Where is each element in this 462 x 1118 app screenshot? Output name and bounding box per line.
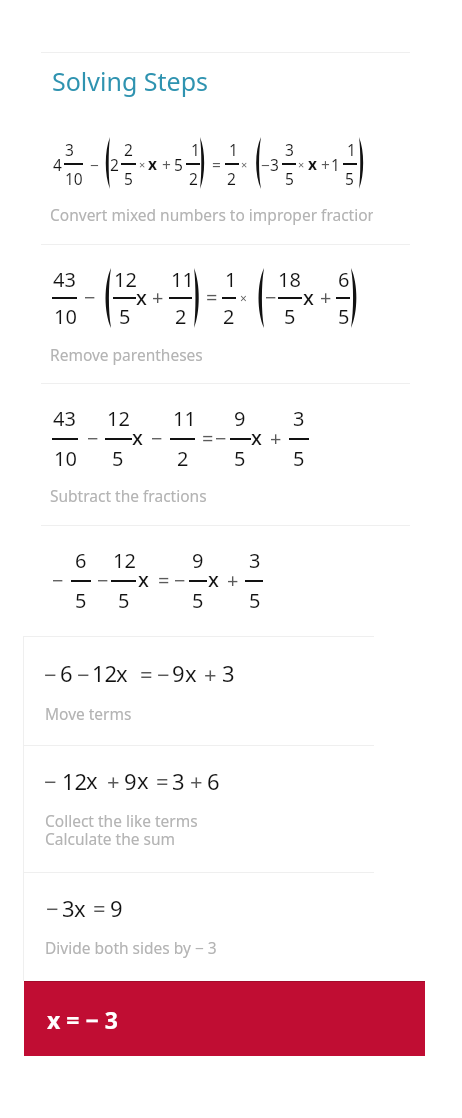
button[interactable]	[23, 746, 374, 872]
button[interactable]	[41, 258, 410, 376]
staticText: x	[251, 424, 262, 451]
staticText: 2	[175, 303, 187, 330]
staticText: x	[137, 765, 149, 795]
staticText: 9	[124, 766, 137, 796]
staticText: −	[90, 154, 99, 175]
staticText: 3	[249, 547, 261, 574]
staticText: 18	[278, 266, 301, 293]
staticText: x	[116, 658, 128, 688]
staticText: =	[156, 766, 169, 796]
staticText: 1	[347, 139, 356, 160]
staticText: 5	[284, 303, 296, 330]
staticText: 2	[110, 154, 119, 175]
staticText: +	[204, 659, 217, 689]
button[interactable]	[23, 637, 374, 745]
staticText: x	[132, 424, 143, 451]
staticText: 3	[62, 893, 75, 923]
staticText: 3	[65, 139, 74, 160]
staticText: 3	[270, 154, 279, 175]
staticText: 43	[53, 266, 76, 293]
staticText: 2	[124, 139, 133, 160]
staticText: −	[174, 567, 186, 594]
staticText: 11	[173, 405, 196, 432]
staticText: Solving Steps	[52, 64, 208, 98]
staticText: +	[320, 284, 332, 311]
staticText: x	[86, 765, 98, 795]
staticText: 6	[75, 547, 87, 574]
staticText: 4	[53, 154, 62, 175]
staticText: 5	[249, 587, 261, 614]
staticText: =	[93, 893, 106, 923]
staticText: =	[158, 567, 170, 594]
staticText: ×	[139, 157, 146, 172]
staticText: 10	[65, 168, 83, 189]
staticText: 5	[285, 168, 294, 189]
staticText: Subtract the fractions	[50, 485, 207, 506]
staticText: x	[136, 284, 147, 311]
staticText: 9	[110, 893, 123, 923]
staticText: 9	[234, 405, 246, 432]
staticText: −	[84, 284, 96, 311]
staticText: 5	[112, 445, 124, 472]
staticText: 1	[331, 154, 340, 175]
staticText: 11	[171, 266, 194, 293]
staticText: 3	[285, 139, 294, 160]
staticText: ×	[240, 290, 247, 306]
staticText: 6	[60, 658, 73, 688]
staticText: x	[185, 658, 197, 688]
staticText: x	[74, 893, 86, 923]
button[interactable]	[41, 131, 410, 241]
staticText: −	[157, 659, 170, 689]
button[interactable]	[23, 873, 374, 971]
staticText: 2	[227, 168, 236, 189]
staticText: 9	[172, 658, 185, 688]
staticText: −	[46, 893, 59, 923]
staticText: +	[107, 766, 120, 796]
staticText: 5	[192, 587, 204, 614]
staticText: 12	[107, 405, 130, 432]
staticText: −	[151, 425, 163, 452]
staticText: ×	[298, 157, 305, 172]
staticText: 5	[119, 303, 131, 330]
staticText: 1	[225, 266, 237, 293]
staticText: Calculate the sum	[45, 828, 176, 849]
staticText: 5	[174, 154, 183, 175]
staticText: −	[77, 659, 90, 689]
staticText: +	[190, 766, 203, 796]
staticText: 2	[223, 303, 235, 330]
staticText: 6	[207, 766, 220, 796]
staticText: 9	[192, 547, 204, 574]
staticText: 5	[118, 587, 130, 614]
staticText: 6	[338, 266, 350, 293]
staticText: 10	[54, 445, 77, 472]
staticText: 5	[75, 587, 87, 614]
button[interactable]: x = − 3	[24, 981, 425, 1056]
staticText: Remove parentheses	[50, 344, 203, 365]
button[interactable]	[41, 396, 410, 514]
staticText: 1	[229, 139, 238, 160]
staticText: 12	[113, 547, 136, 574]
staticText: x	[308, 153, 317, 174]
staticText: Divide both sides by − 3	[45, 937, 217, 958]
staticText: 5	[345, 168, 354, 189]
staticText: 2	[177, 445, 189, 472]
button[interactable]	[41, 538, 410, 628]
staticText: 12	[114, 266, 137, 293]
staticText: 5	[293, 445, 305, 472]
button[interactable]	[41, 60, 221, 100]
staticText: x	[138, 566, 149, 593]
staticText: −	[87, 425, 99, 452]
staticText: 5	[338, 303, 350, 330]
staticText: +	[270, 425, 282, 452]
staticText: 3	[222, 658, 235, 688]
staticText: ×	[241, 157, 248, 172]
staticText: −	[97, 567, 109, 594]
staticText: +	[321, 154, 330, 175]
staticText: 2	[189, 168, 198, 189]
staticText: +	[162, 154, 171, 175]
staticText: −	[261, 154, 270, 175]
staticText: =	[140, 659, 153, 689]
staticText: −	[265, 284, 277, 311]
staticText: −	[215, 425, 227, 452]
staticText: 5	[234, 445, 246, 472]
